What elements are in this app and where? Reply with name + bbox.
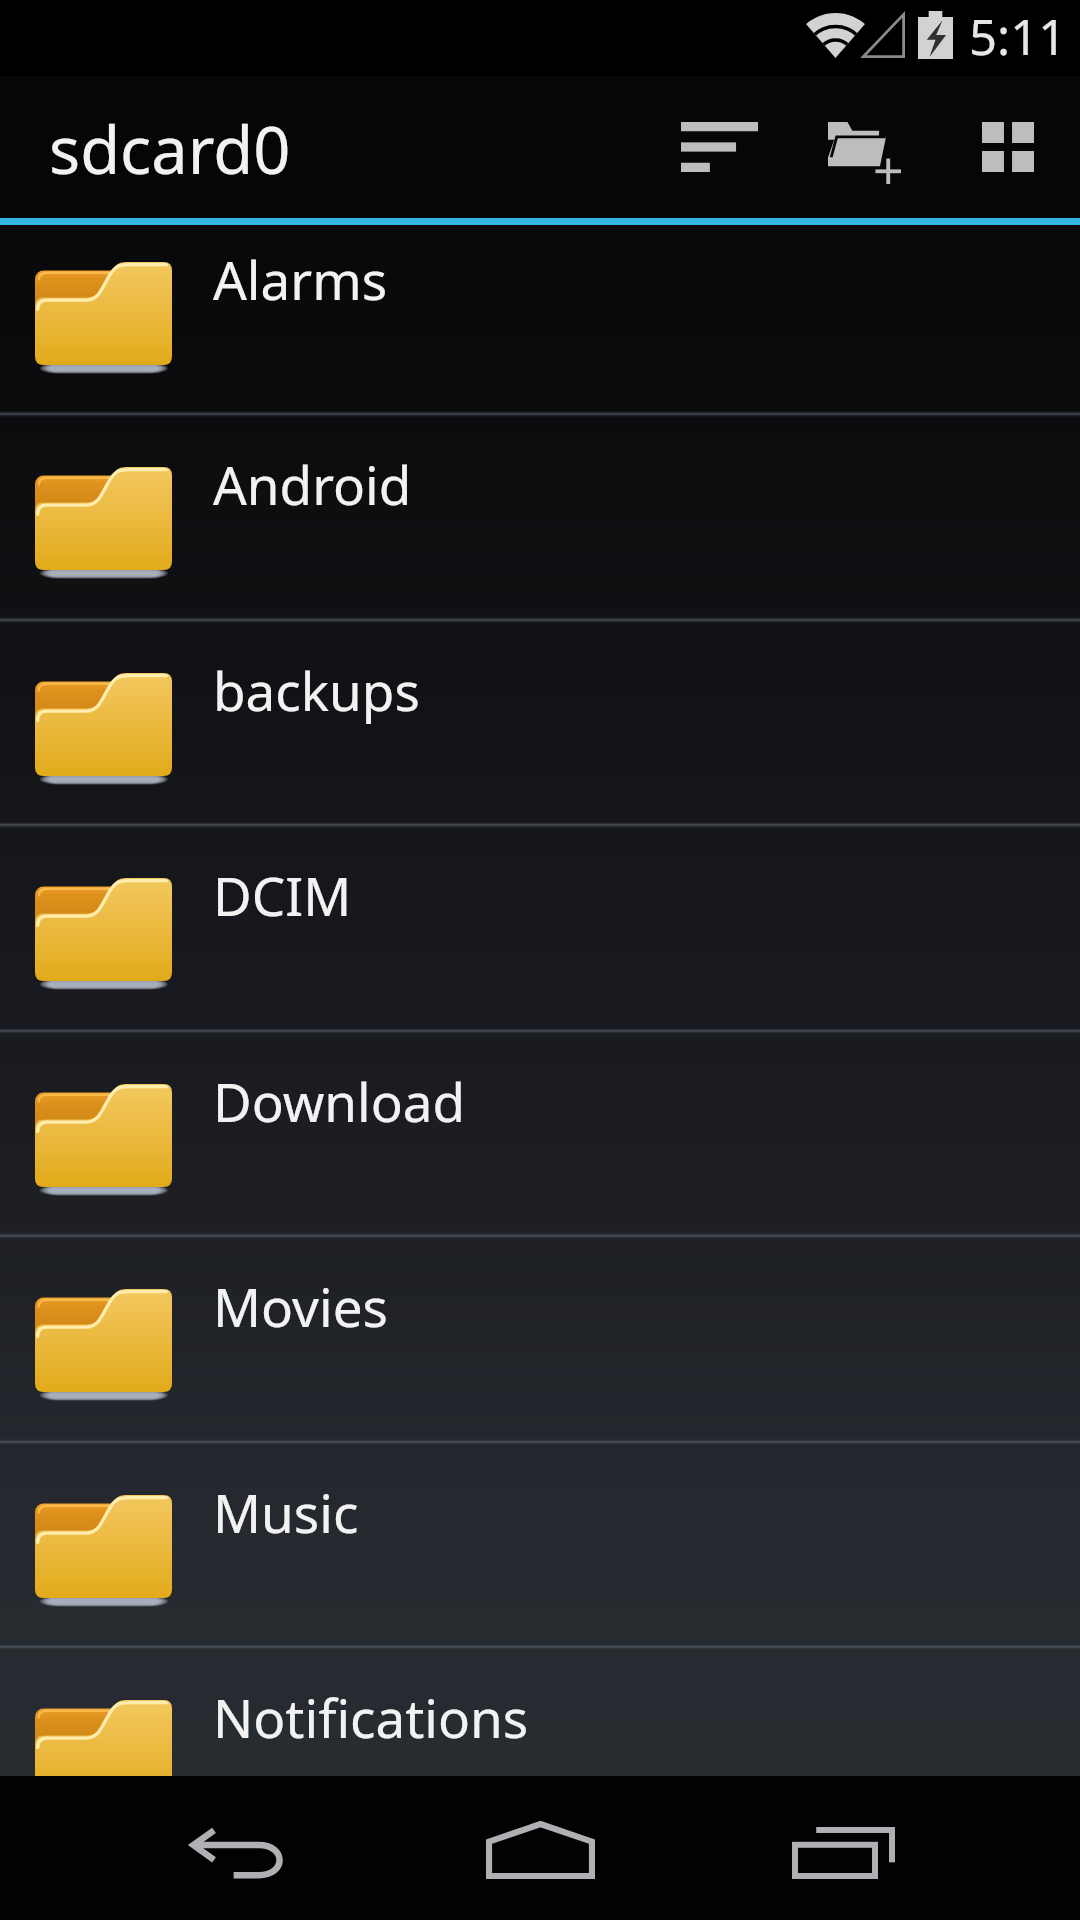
staticText: Download <box>213 1065 466 1137</box>
staticText: Alarms <box>213 243 388 315</box>
button[interactable]: Download <box>0 1030 1080 1236</box>
button[interactable]: Back <box>110 1776 370 1920</box>
button[interactable]: backups <box>0 619 1080 825</box>
staticText: DCIM <box>213 859 352 931</box>
staticText: Music <box>213 1476 359 1548</box>
other: Signal <box>862 13 905 58</box>
button[interactable]: New folder <box>794 80 934 220</box>
button[interactable]: Alarms <box>0 225 1080 414</box>
button[interactable]: Sort <box>641 80 798 220</box>
staticText: Movies <box>213 1270 388 1342</box>
button[interactable]: Music <box>0 1441 1080 1647</box>
staticText: 5:11 <box>969 3 1067 70</box>
staticText: backups <box>213 654 420 726</box>
other: Battery charging <box>918 11 953 59</box>
button[interactable]: Movies <box>0 1235 1080 1441</box>
staticText: Android <box>213 448 412 520</box>
button[interactable]: Home <box>410 1776 670 1920</box>
button[interactable]: Notifications <box>0 1646 1080 1776</box>
button[interactable]: Grid view <box>938 80 1078 220</box>
staticText: Notifications <box>213 1681 529 1753</box>
button[interactable]: DCIM <box>0 824 1080 1030</box>
button[interactable]: Android <box>0 413 1080 619</box>
other: Wi-Fi <box>806 13 865 58</box>
button[interactable]: Recents <box>712 1776 972 1920</box>
staticText: sdcard0 <box>49 105 291 194</box>
